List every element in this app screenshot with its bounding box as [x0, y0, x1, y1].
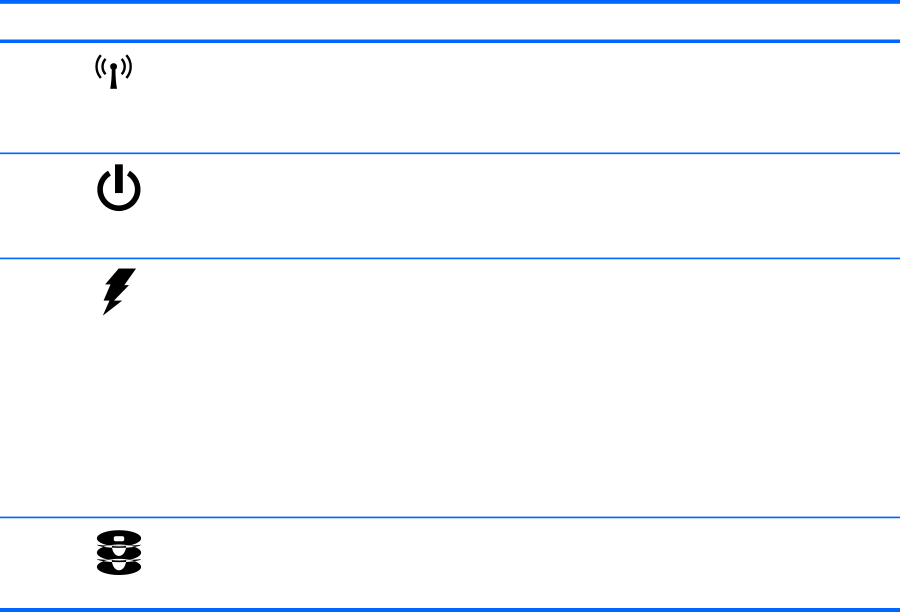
button[interactable]: Power [0, 152, 900, 258]
button[interactable]: Wireless [0, 39, 900, 152]
button[interactable]: Power connector [0, 258, 900, 517]
button[interactable]: Drive [0, 517, 900, 608]
